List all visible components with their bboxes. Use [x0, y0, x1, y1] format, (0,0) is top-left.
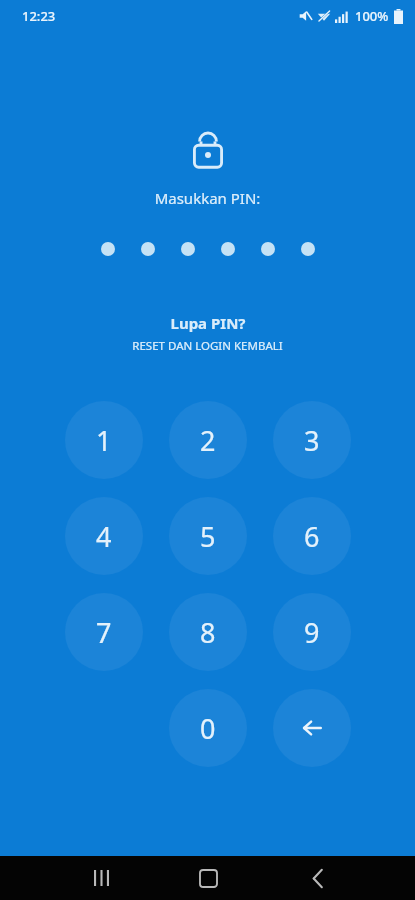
button[interactable]: 8 — [169, 593, 247, 671]
button[interactable]: 6 — [273, 497, 351, 575]
staticText: 3 — [304, 422, 320, 459]
button[interactable]: 2 — [169, 401, 247, 479]
button[interactable]: 9 — [273, 593, 351, 671]
staticText: RESET DAN LOGIN KEMBALI — [132, 338, 283, 354]
button[interactable]: 3 — [273, 401, 351, 479]
button[interactable]: Lupa PIN? — [0, 313, 415, 354]
staticText: 0 — [200, 710, 216, 747]
button[interactable]: Recents — [84, 861, 118, 895]
button[interactable]: 0 — [169, 689, 247, 767]
staticText: 4 — [96, 518, 112, 555]
staticText: 5 — [200, 518, 216, 555]
staticText: 2 — [200, 422, 216, 459]
button[interactable]: 5 — [169, 497, 247, 575]
staticText: 1 — [96, 422, 112, 459]
button[interactable]: 4 — [65, 497, 143, 575]
button[interactable]: 7 — [65, 593, 143, 671]
button[interactable]: 1 — [65, 401, 143, 479]
staticText: Masukkan PIN: — [0, 188, 415, 208]
staticText: Lupa PIN? — [170, 313, 246, 333]
staticText: 7 — [96, 614, 112, 651]
button[interactable]: Delete — [273, 689, 351, 767]
staticText: 6 — [304, 518, 320, 555]
button[interactable]: Home — [190, 860, 226, 896]
staticText: 100% — [355, 7, 389, 25]
staticText: 8 — [200, 614, 216, 651]
staticText: 9 — [304, 614, 320, 651]
button[interactable]: Back — [301, 861, 335, 895]
staticText: 12:23 — [22, 7, 56, 25]
